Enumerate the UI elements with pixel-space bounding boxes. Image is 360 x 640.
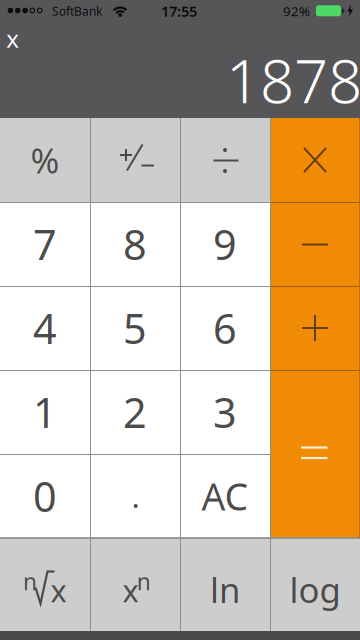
button[interactable]: 0 bbox=[0, 454, 90, 538]
button[interactable]: 8 bbox=[90, 202, 180, 286]
staticText: 1878 bbox=[226, 40, 360, 120]
button[interactable]: Nth root bbox=[0, 538, 90, 631]
button[interactable]: Equals bbox=[270, 370, 360, 538]
staticText: ln bbox=[210, 566, 240, 612]
staticText: SoftBank bbox=[52, 3, 102, 19]
button[interactable]: 4 bbox=[0, 286, 90, 370]
button[interactable]: 9 bbox=[180, 202, 270, 286]
button[interactable]: ln bbox=[180, 538, 270, 631]
staticText: 4 bbox=[33, 301, 57, 355]
button[interactable]: 2 bbox=[90, 370, 180, 454]
button[interactable]: Subtract bbox=[270, 202, 360, 286]
staticText: 3 bbox=[213, 385, 237, 439]
button[interactable]: Multiply bbox=[270, 118, 360, 202]
button[interactable]: Plus minus bbox=[90, 118, 180, 202]
staticText: 92% bbox=[283, 2, 310, 20]
button[interactable]: log bbox=[270, 538, 360, 631]
staticText: 1 bbox=[33, 385, 57, 439]
staticText: x bbox=[6, 23, 19, 54]
button[interactable]: 5 bbox=[90, 286, 180, 370]
staticText: 6 bbox=[213, 301, 237, 355]
staticText: 2 bbox=[123, 385, 147, 439]
button[interactable]: Add bbox=[270, 286, 360, 370]
button[interactable]: AC bbox=[180, 454, 270, 538]
staticText: log bbox=[289, 566, 340, 612]
staticText: 9 bbox=[213, 217, 237, 271]
staticText: x bbox=[50, 570, 66, 611]
staticText: 7 bbox=[33, 217, 57, 271]
staticText: 8 bbox=[123, 217, 147, 271]
button[interactable]: 7 bbox=[0, 202, 90, 286]
staticText: 0 bbox=[33, 469, 57, 523]
button[interactable]: 6 bbox=[180, 286, 270, 370]
staticText: % bbox=[30, 137, 59, 183]
button[interactable]: 1 bbox=[0, 370, 90, 454]
staticText: x bbox=[123, 570, 139, 611]
staticText: AC bbox=[201, 471, 248, 521]
button[interactable]: % bbox=[0, 118, 90, 202]
button[interactable]: Decimal point bbox=[90, 454, 180, 538]
button[interactable]: Power bbox=[90, 538, 180, 631]
staticText: 17:55 bbox=[161, 1, 197, 21]
staticText: n bbox=[137, 566, 151, 596]
button[interactable]: 3 bbox=[180, 370, 270, 454]
staticText: n bbox=[23, 566, 37, 596]
staticText: 5 bbox=[123, 301, 147, 355]
button[interactable]: Divide bbox=[180, 118, 270, 202]
